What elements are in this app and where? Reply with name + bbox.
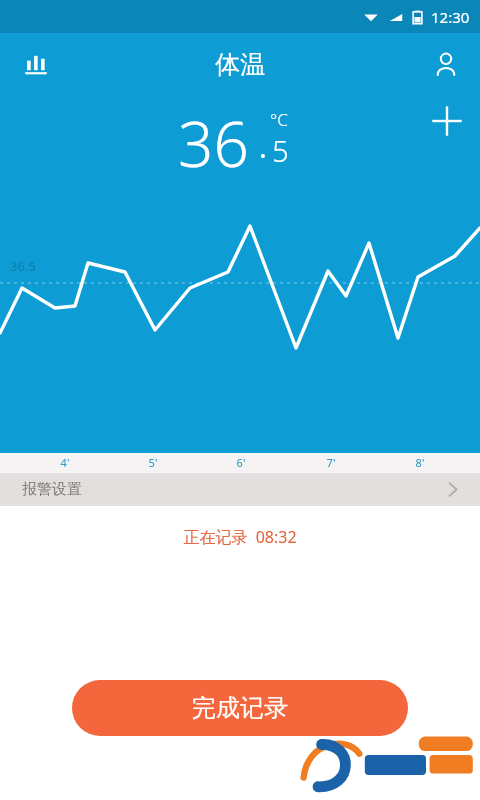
staticText: 正在记录 08:32 xyxy=(0,526,480,548)
staticText: 体温 xyxy=(215,49,265,80)
staticText: °C xyxy=(270,108,288,131)
staticText: 36 xyxy=(178,101,249,185)
staticText: 5 xyxy=(272,131,289,170)
staticText: 7' xyxy=(321,455,341,470)
button[interactable]: Profile xyxy=(426,44,466,84)
button[interactable]: Statistics xyxy=(16,44,56,84)
staticText: . xyxy=(258,115,268,169)
staticText: 完成记录 xyxy=(192,693,288,723)
button[interactable]: Add record xyxy=(424,98,470,144)
staticText: 报警设置 xyxy=(22,480,82,499)
staticText: 36.5 xyxy=(10,257,36,275)
staticText: 4' xyxy=(55,455,75,470)
staticText: 5' xyxy=(143,455,163,470)
staticText: 6' xyxy=(231,455,251,470)
staticText: 8' xyxy=(410,455,430,470)
button[interactable]: 完成记录 xyxy=(72,680,408,736)
button[interactable]: 报警设置 xyxy=(0,473,480,506)
staticText: 12:30 xyxy=(431,7,470,27)
